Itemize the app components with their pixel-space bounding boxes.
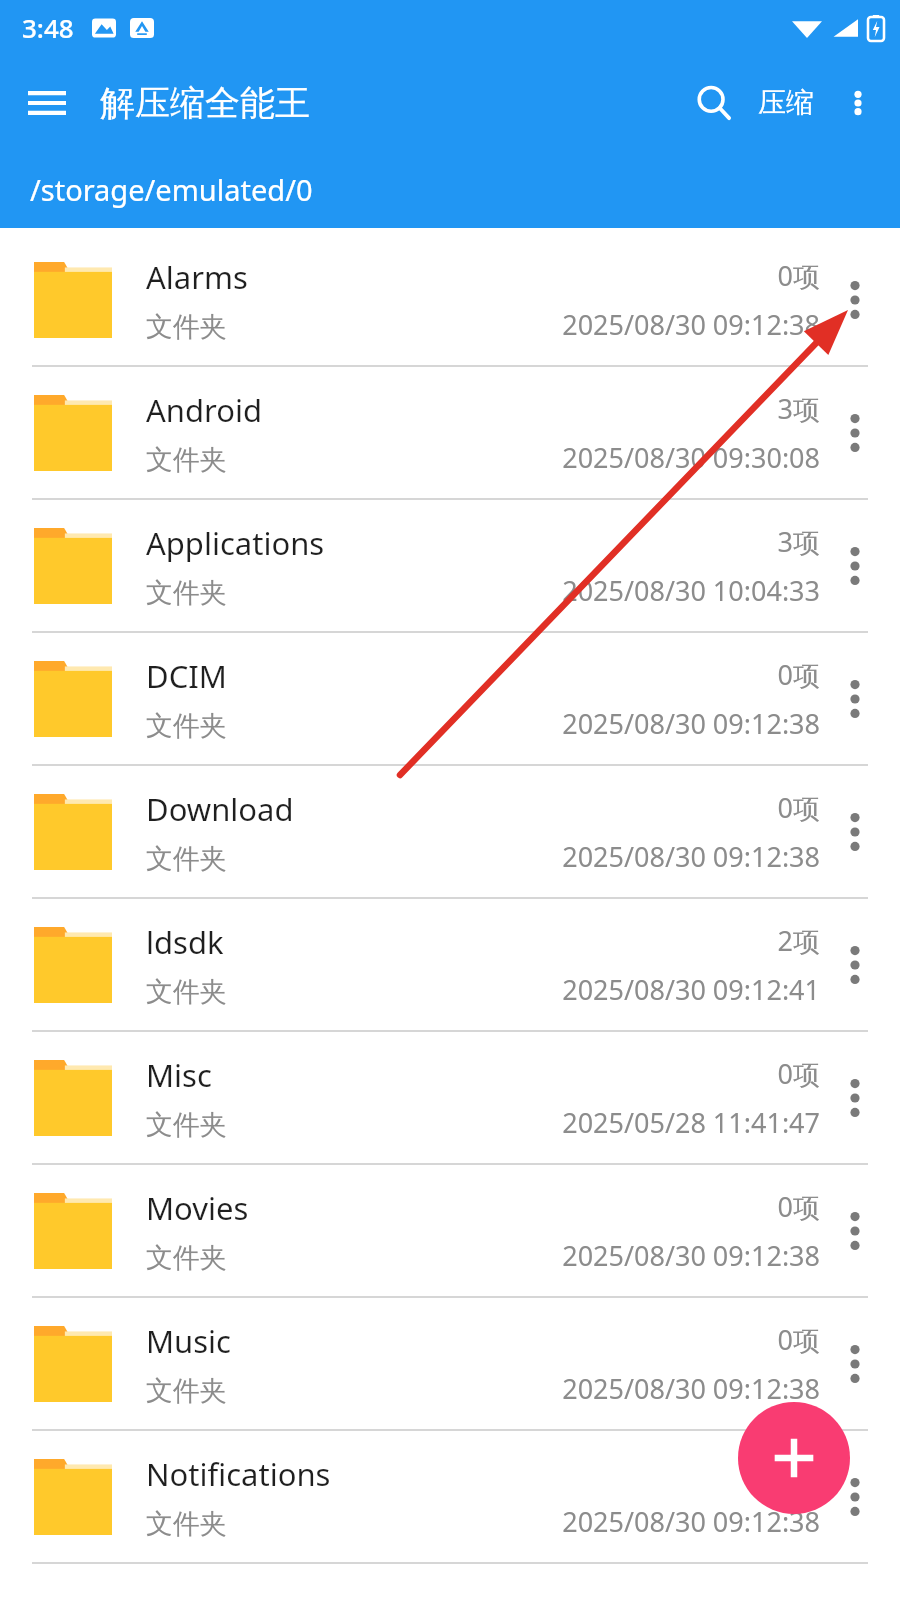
- staticText: 2025/08/30 09:12:38: [562, 1370, 820, 1407]
- staticText: 3项: [777, 390, 820, 427]
- staticText: 2025/08/30 09:12:38: [562, 1237, 820, 1274]
- button[interactable]: ldsdk: [0, 899, 900, 1030]
- button[interactable]: Search: [678, 67, 750, 139]
- button[interactable]: Notifications: [0, 1431, 900, 1562]
- staticText: 文件夹: [146, 443, 227, 477]
- staticText: 压缩: [758, 85, 814, 120]
- button[interactable]: Add: [738, 1402, 850, 1514]
- staticText: 0项: [777, 789, 820, 826]
- button[interactable]: Download: [0, 766, 900, 897]
- staticText: 文件夹: [146, 310, 227, 344]
- staticText: ldsdk: [146, 921, 224, 963]
- staticText: Misc: [146, 1054, 212, 1096]
- button[interactable]: /storage/emulated/0: [0, 150, 900, 228]
- staticText: 0项: [777, 257, 820, 294]
- staticText: Notifications: [146, 1453, 331, 1495]
- staticText: Android: [146, 389, 263, 431]
- staticText: 2025/08/30 09:30:08: [562, 439, 820, 476]
- staticText: Download: [146, 788, 294, 830]
- button[interactable]: DCIM: [0, 633, 900, 764]
- staticText: 0项: [777, 1188, 820, 1225]
- button[interactable]: More options for ldsdk: [820, 910, 890, 1020]
- staticText: 2025/08/30 09:12:41: [562, 971, 820, 1008]
- staticText: 文件夹: [146, 975, 227, 1009]
- staticText: Applications: [146, 522, 325, 564]
- staticText: Music: [146, 1320, 232, 1362]
- staticText: 文件夹: [146, 576, 227, 610]
- button[interactable]: More options for Download: [820, 777, 890, 887]
- staticText: Movies: [146, 1187, 249, 1229]
- staticText: /storage/emulated/0: [30, 170, 313, 209]
- staticText: DCIM: [146, 655, 227, 697]
- button[interactable]: More options for Applications: [820, 511, 890, 621]
- button[interactable]: Music: [0, 1298, 900, 1429]
- staticText: 文件夹: [146, 842, 227, 876]
- staticText: 0项: [777, 1321, 820, 1358]
- staticText: 文件夹: [146, 1374, 227, 1408]
- staticText: 2025/08/30 09:12:38: [562, 705, 820, 742]
- button[interactable]: Applications: [0, 500, 900, 631]
- button[interactable]: Alarms: [0, 234, 900, 365]
- staticText: 0项: [777, 656, 820, 693]
- staticText: 0项: [777, 1454, 820, 1491]
- button[interactable]: Open navigation menu: [14, 70, 80, 136]
- button[interactable]: More options for Music: [820, 1309, 890, 1419]
- staticText: 2025/08/30 09:12:38: [562, 838, 820, 875]
- staticText: 3项: [777, 523, 820, 560]
- staticText: 2025/05/28 11:41:47: [562, 1104, 820, 1141]
- button[interactable]: More options for DCIM: [820, 644, 890, 754]
- button[interactable]: More options: [822, 67, 894, 139]
- button[interactable]: More options for Misc: [820, 1043, 890, 1153]
- staticText: 3:48: [22, 10, 74, 45]
- staticText: 文件夹: [146, 1507, 227, 1541]
- staticText: 2025/08/30 10:04:33: [562, 572, 820, 609]
- staticText: 2025/08/30 09:12:38: [562, 1503, 820, 1540]
- button[interactable]: More options for Alarms: [820, 245, 890, 355]
- staticText: 2项: [777, 922, 820, 959]
- button[interactable]: More options for Movies: [820, 1176, 890, 1286]
- staticText: 文件夹: [146, 1108, 227, 1142]
- button[interactable]: More options for Notifications: [820, 1442, 890, 1552]
- button[interactable]: Android: [0, 367, 900, 498]
- staticText: Alarms: [146, 256, 248, 298]
- staticText: 2025/08/30 09:12:38: [562, 306, 820, 343]
- staticText: 0项: [777, 1055, 820, 1092]
- button[interactable]: 压缩: [750, 75, 822, 130]
- button[interactable]: More options for Android: [820, 378, 890, 488]
- staticText: 文件夹: [146, 1241, 227, 1275]
- button[interactable]: Misc: [0, 1032, 900, 1163]
- staticText: 文件夹: [146, 709, 227, 743]
- button[interactable]: Movies: [0, 1165, 900, 1296]
- staticText: 解压缩全能王: [100, 81, 310, 125]
